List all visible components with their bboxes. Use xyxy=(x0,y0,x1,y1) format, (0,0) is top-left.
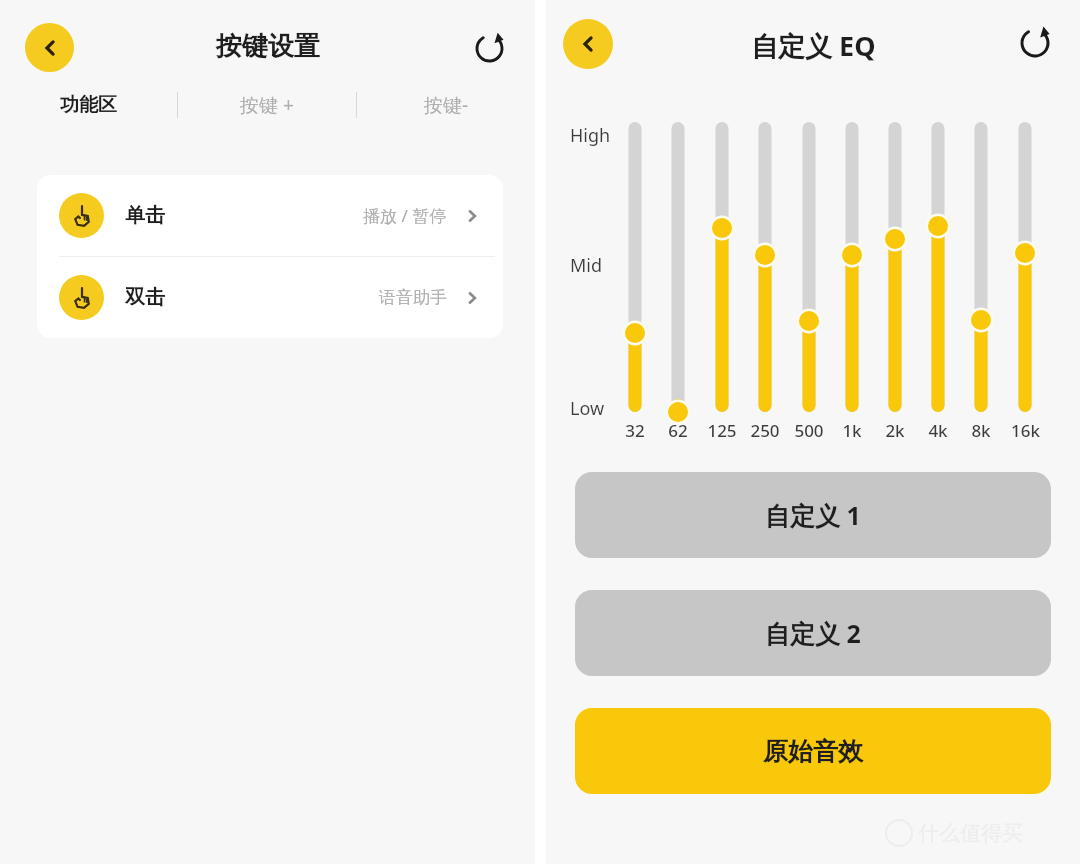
button[interactable]: Back xyxy=(563,19,613,69)
button[interactable]: Back xyxy=(25,23,74,72)
staticText: 按键 + xyxy=(240,92,294,118)
button[interactable]: 自定义 2 xyxy=(575,590,1051,676)
staticText: 自定义 EQ xyxy=(751,27,876,64)
staticText: 功能区 xyxy=(60,93,117,117)
staticText: 语音助手 xyxy=(379,287,447,308)
staticText: 自定义 2 xyxy=(765,616,861,650)
button[interactable]: Refresh xyxy=(466,25,512,71)
staticText: 自定义 1 xyxy=(765,498,861,532)
staticText: Low xyxy=(570,396,605,421)
staticText: 单击 xyxy=(125,203,165,228)
staticText: 按键设置 xyxy=(216,30,320,63)
staticText: 什么值得买 xyxy=(918,820,1023,846)
staticText: 250 xyxy=(750,419,780,442)
staticText: Mid xyxy=(570,253,603,278)
staticText: High xyxy=(570,123,611,148)
staticText: 原始音效 xyxy=(763,736,863,767)
button[interactable]: 原始音效 xyxy=(575,708,1051,794)
staticText: 4k xyxy=(928,419,948,442)
staticText: 16k xyxy=(1011,419,1040,442)
button[interactable]: 功能区 xyxy=(0,82,177,128)
staticText: 125 xyxy=(707,419,737,442)
button[interactable]: 按键 + xyxy=(178,82,356,128)
button[interactable]: Refresh xyxy=(1011,19,1059,67)
staticText: 双击 xyxy=(125,285,165,310)
staticText: 32 xyxy=(625,419,645,442)
staticText: 按键- xyxy=(424,92,469,118)
staticText: 播放 / 暂停 xyxy=(363,204,447,227)
button[interactable]: 自定义 1 xyxy=(575,472,1051,558)
button[interactable]: 双击 xyxy=(37,257,503,338)
button[interactable]: 按键- xyxy=(357,82,535,128)
staticText: 1k xyxy=(842,419,862,442)
button[interactable]: 单击 xyxy=(37,175,503,256)
staticText: 2k xyxy=(885,419,905,442)
staticText: 500 xyxy=(794,419,824,442)
staticText: 62 xyxy=(668,419,688,442)
staticText: 8k xyxy=(971,419,991,442)
